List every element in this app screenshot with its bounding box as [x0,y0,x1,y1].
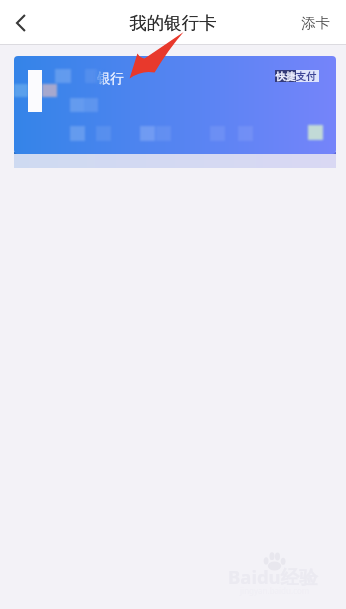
button[interactable]: 银行 [14,56,336,154]
button[interactable]: 添卡 [287,2,346,44]
staticText: 银行 [97,70,124,87]
staticText: 添卡 [301,14,330,32]
button[interactable]: Back [0,0,42,45]
staticText: 我的银行卡 [129,12,217,34]
staticText: 支付 [296,70,316,83]
staticText: 我的银行卡 [129,12,217,34]
staticText: Baidu经验 [228,564,318,589]
staticText: 快捷 [276,70,296,83]
